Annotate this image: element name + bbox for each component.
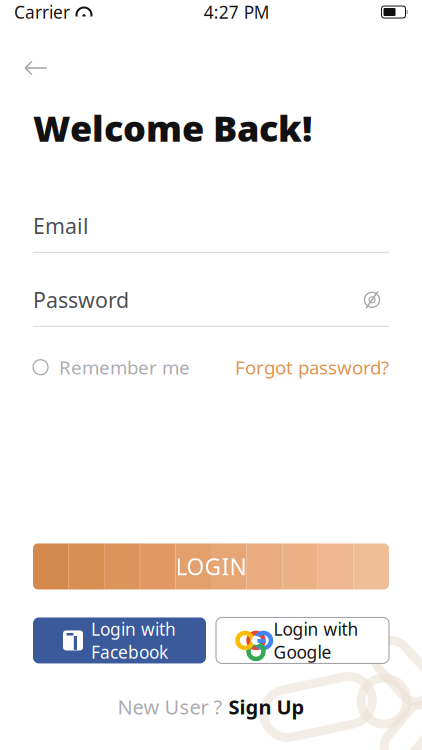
staticText: 4:27 PM [204,0,270,23]
button[interactable]: Login with Google [216,617,389,663]
staticText: Forgot password? [235,355,389,380]
staticText: Sign Up [228,693,304,720]
staticText: LOGIN [175,551,246,581]
staticText: Remember me [59,355,190,380]
button[interactable]: New User ? [117,689,304,724]
staticText: Login with Facebook [91,617,176,663]
staticText: Password [33,286,129,314]
button[interactable]: Show password [355,288,389,312]
button[interactable]: Login with Facebook [33,617,206,663]
staticText: Carrier [14,0,70,23]
staticText: Welcome Back! [33,104,312,152]
button[interactable]: LOGIN [0,543,422,589]
button[interactable]: Back [14,48,58,88]
staticText: New User ? [117,693,222,720]
staticText: Login with Google [273,617,358,663]
staticText: Email [33,212,89,240]
button[interactable]: Remember me [33,349,190,386]
button[interactable]: Forgot password? [235,349,389,386]
